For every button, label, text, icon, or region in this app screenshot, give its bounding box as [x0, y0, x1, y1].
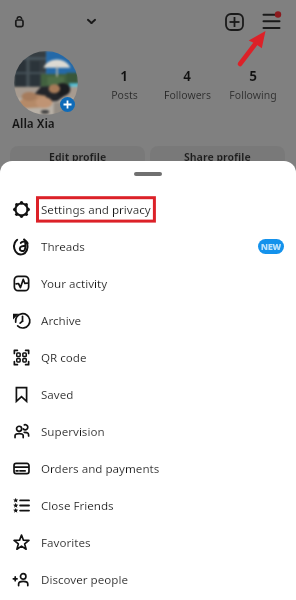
staticText: Edit profile: [49, 150, 107, 164]
button[interactable]: Archive: [0, 302, 296, 339]
button[interactable]: 4: [147, 67, 227, 102]
button[interactable]: Share profile: [150, 146, 285, 168]
staticText: 1: [120, 67, 128, 85]
button[interactable]: Orders and payments: [0, 450, 296, 487]
button[interactable]: Threads: [0, 228, 296, 265]
staticText: 5: [249, 67, 257, 85]
staticText: Your activity: [41, 276, 108, 292]
staticText: Saved: [41, 387, 74, 403]
button[interactable]: 1: [84, 67, 164, 102]
staticText: QR code: [41, 350, 87, 366]
staticText: Orders and payments: [41, 461, 160, 477]
button[interactable]: Saved: [0, 376, 296, 413]
staticText: Share profile: [184, 150, 251, 164]
staticText: Archive: [41, 313, 82, 329]
button[interactable]: Edit profile: [10, 146, 145, 168]
staticText: Favorites: [41, 535, 91, 551]
button[interactable]: Profile photo: [14, 51, 78, 115]
staticText: Following: [229, 88, 277, 102]
button[interactable]: QR code: [0, 339, 296, 376]
button[interactable]: Your activity: [0, 265, 296, 302]
staticText: Posts: [111, 88, 138, 102]
button[interactable]: Add story: [60, 97, 75, 112]
button[interactable]: Favorites: [0, 524, 296, 561]
staticText: Discover people: [41, 572, 128, 588]
staticText: Supervision: [41, 424, 105, 440]
staticText: Close Friends: [41, 498, 114, 514]
button[interactable]: Discover people: [0, 561, 296, 598]
button[interactable]: Close Friends: [0, 487, 296, 524]
staticText: Settings and privacy: [41, 202, 151, 218]
staticText: Followers: [164, 88, 211, 102]
staticText: 4: [183, 67, 191, 85]
button[interactable]: 5: [213, 67, 293, 102]
staticText: Threads: [41, 239, 85, 255]
staticText: Alla Xia: [12, 116, 55, 132]
button[interactable]: Supervision: [0, 413, 296, 450]
staticText: NEW: [261, 241, 281, 253]
button[interactable]: Settings and privacy: [0, 191, 296, 228]
